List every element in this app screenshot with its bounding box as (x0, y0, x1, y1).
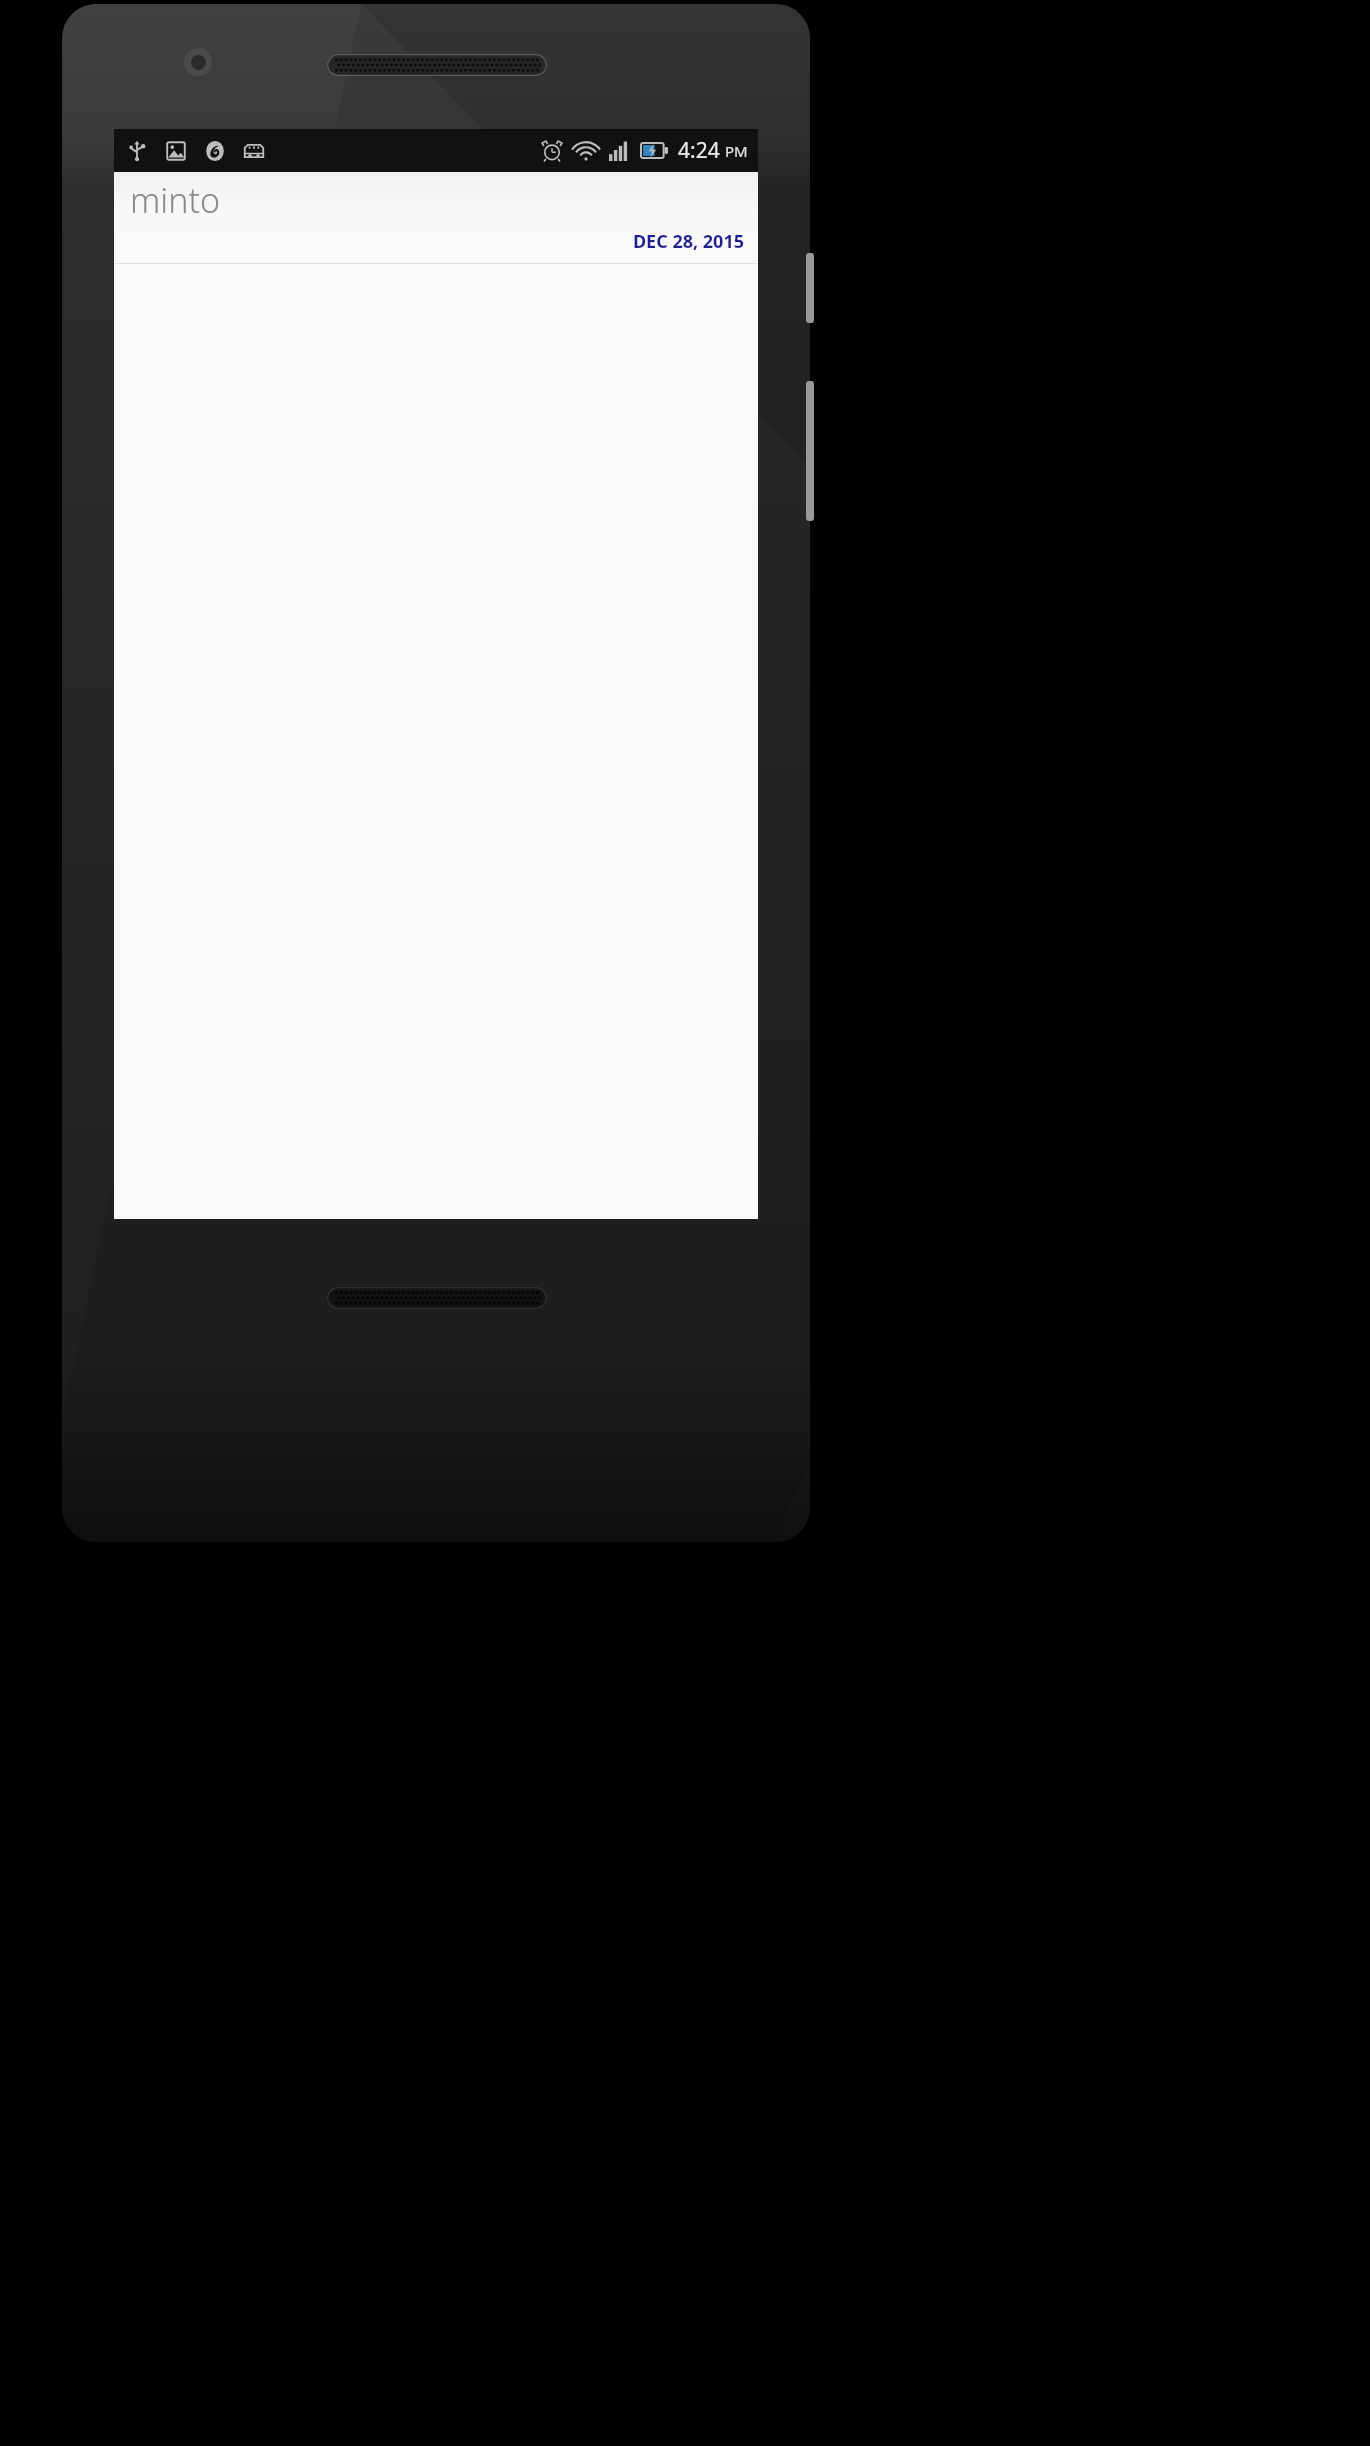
staticText: 4:24 (678, 136, 720, 165)
staticText: DEC 28, 2015 (632, 229, 744, 254)
staticText: minto (130, 177, 221, 223)
button[interactable]: minto (114, 172, 758, 264)
staticText: PM (725, 141, 748, 161)
